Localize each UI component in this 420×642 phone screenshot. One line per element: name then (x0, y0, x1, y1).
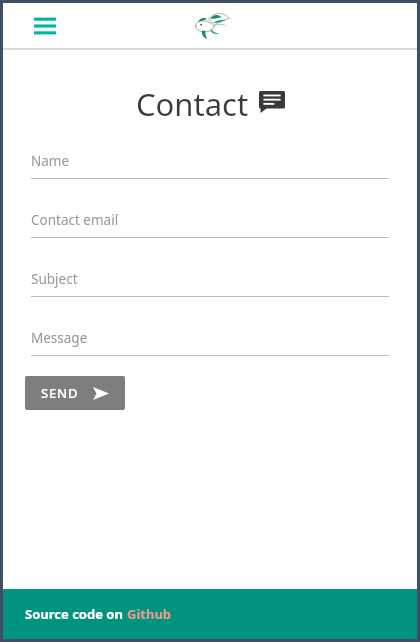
button[interactable]: Message (31, 329, 389, 356)
staticText: Name (31, 152, 70, 170)
button[interactable]: Contact email (31, 211, 389, 238)
staticText: Source code on (25, 605, 127, 623)
button[interactable]: SEND (25, 376, 125, 410)
staticText: Message (31, 329, 88, 347)
staticText: SEND (41, 384, 79, 402)
button[interactable]: Source code on (25, 605, 172, 623)
button[interactable]: Open navigation menu (29, 10, 61, 42)
staticText: Contact (136, 83, 249, 125)
staticText: Subject (31, 270, 78, 288)
button[interactable]: Name (31, 152, 389, 179)
button[interactable]: Subject (31, 270, 389, 297)
button[interactable]: Site logo, home (186, 7, 234, 45)
staticText: Contact email (31, 211, 119, 229)
staticText: Github (127, 605, 172, 623)
